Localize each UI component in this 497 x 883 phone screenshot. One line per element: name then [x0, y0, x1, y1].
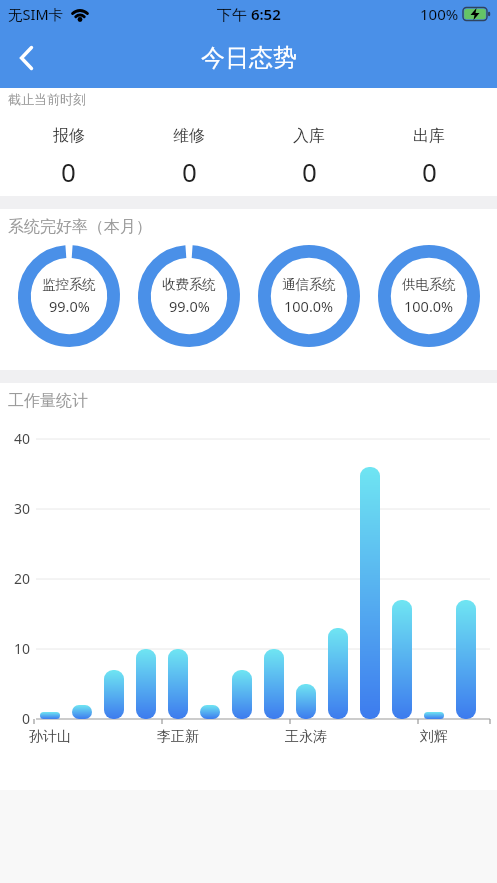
staticText: 孙计山 [29, 728, 71, 746]
staticText: 0 [422, 154, 437, 189]
staticText: 0 [182, 154, 197, 189]
button[interactable]: 监控系统 [18, 245, 120, 347]
staticText: 10 [13, 639, 30, 658]
staticText: 无SIM卡 [8, 4, 64, 24]
staticText: 维修 [173, 126, 205, 146]
button[interactable] [4, 36, 48, 80]
staticText: 报修 [53, 126, 85, 146]
staticText: 系统完好率（本月） [8, 217, 152, 237]
button[interactable]: 通信系统 [258, 245, 360, 347]
staticText: 今日态势 [201, 43, 297, 73]
staticText: 王永涛 [285, 728, 327, 746]
staticText: 0 [21, 709, 30, 728]
button[interactable]: 入库 [249, 107, 369, 196]
button[interactable]: 报修 [8, 107, 129, 196]
staticText: 0 [302, 154, 317, 189]
staticText: 下午 6:52 [217, 4, 281, 24]
staticText: 99.0% [49, 296, 90, 316]
staticText: 截止当前时刻 [8, 91, 86, 107]
staticText: 99.0% [169, 296, 210, 316]
staticText: 100% [420, 4, 459, 24]
button[interactable]: 维修 [129, 107, 249, 196]
staticText: 监控系统 [42, 276, 96, 293]
staticText: 100.0% [284, 296, 334, 316]
button[interactable]: 供电系统 [378, 245, 480, 347]
staticText: 100.0% [404, 296, 454, 316]
staticText: 李正新 [157, 728, 199, 746]
staticText: 出库 [413, 126, 445, 146]
staticText: 20 [13, 569, 30, 588]
staticText: 工作量统计 [8, 391, 88, 411]
staticText: 入库 [293, 126, 325, 146]
staticText: 40 [13, 429, 30, 448]
staticText: 供电系统 [402, 276, 456, 293]
staticText: 刘辉 [420, 728, 448, 746]
staticText: 30 [13, 499, 30, 518]
staticText: 收费系统 [162, 276, 216, 293]
button[interactable]: 收费系统 [138, 245, 240, 347]
staticText: 0 [61, 154, 76, 189]
button[interactable]: 出库 [369, 107, 489, 196]
staticText: 通信系统 [282, 276, 336, 293]
